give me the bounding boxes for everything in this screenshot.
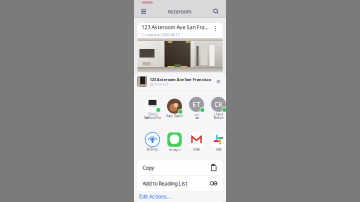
button[interactable]: Menu — [138, 6, 149, 17]
button[interactable]: CK — [207, 97, 229, 120]
staticText: Katie Darrell — [166, 114, 183, 118]
staticText: 123 Asteroom Ave San Francis… — [141, 24, 208, 31]
staticText: Charlie Nichon — [213, 113, 223, 120]
button[interactable]: Close — [214, 77, 226, 85]
staticText: Messages — [168, 148, 180, 151]
staticText: Add to Reading List — [142, 180, 187, 187]
staticText: Gmail — [193, 148, 200, 151]
button[interactable]: Edit Actions… — [134, 191, 176, 202]
button[interactable]: Slack — [207, 132, 229, 151]
button[interactable]: Katie Darrell — [163, 99, 185, 118]
staticText: Edit Actions… — [139, 193, 171, 200]
staticText: AirDrop — [147, 148, 158, 151]
button[interactable]: Search — [210, 6, 222, 17]
staticText: ET — [192, 100, 200, 109]
staticText: 123 Asteroom Ave San Francisco — [150, 77, 211, 82]
button[interactable]: Add to Reading List — [137, 176, 222, 191]
staticText: asteroom.com — [150, 83, 168, 86]
staticText: Eric Tsai — [194, 113, 198, 120]
staticText: Copy — [142, 164, 154, 171]
button[interactable]: Gmail — [185, 132, 207, 151]
staticText: Created on 2020-08-13 — [141, 32, 179, 37]
button[interactable]: Chris's MacBook Pro — [141, 97, 163, 120]
staticText: Chris's MacBook Pro — [144, 113, 161, 120]
button[interactable]: AirDrop — [141, 132, 163, 151]
staticText: CK — [214, 100, 222, 109]
button[interactable]: ET — [185, 97, 207, 120]
button[interactable]: Copy — [137, 160, 222, 175]
staticText: Asteroom — [167, 8, 191, 15]
button[interactable]: More options — [212, 24, 218, 34]
staticText: Slack — [216, 148, 221, 151]
button[interactable]: Messages — [163, 132, 185, 151]
